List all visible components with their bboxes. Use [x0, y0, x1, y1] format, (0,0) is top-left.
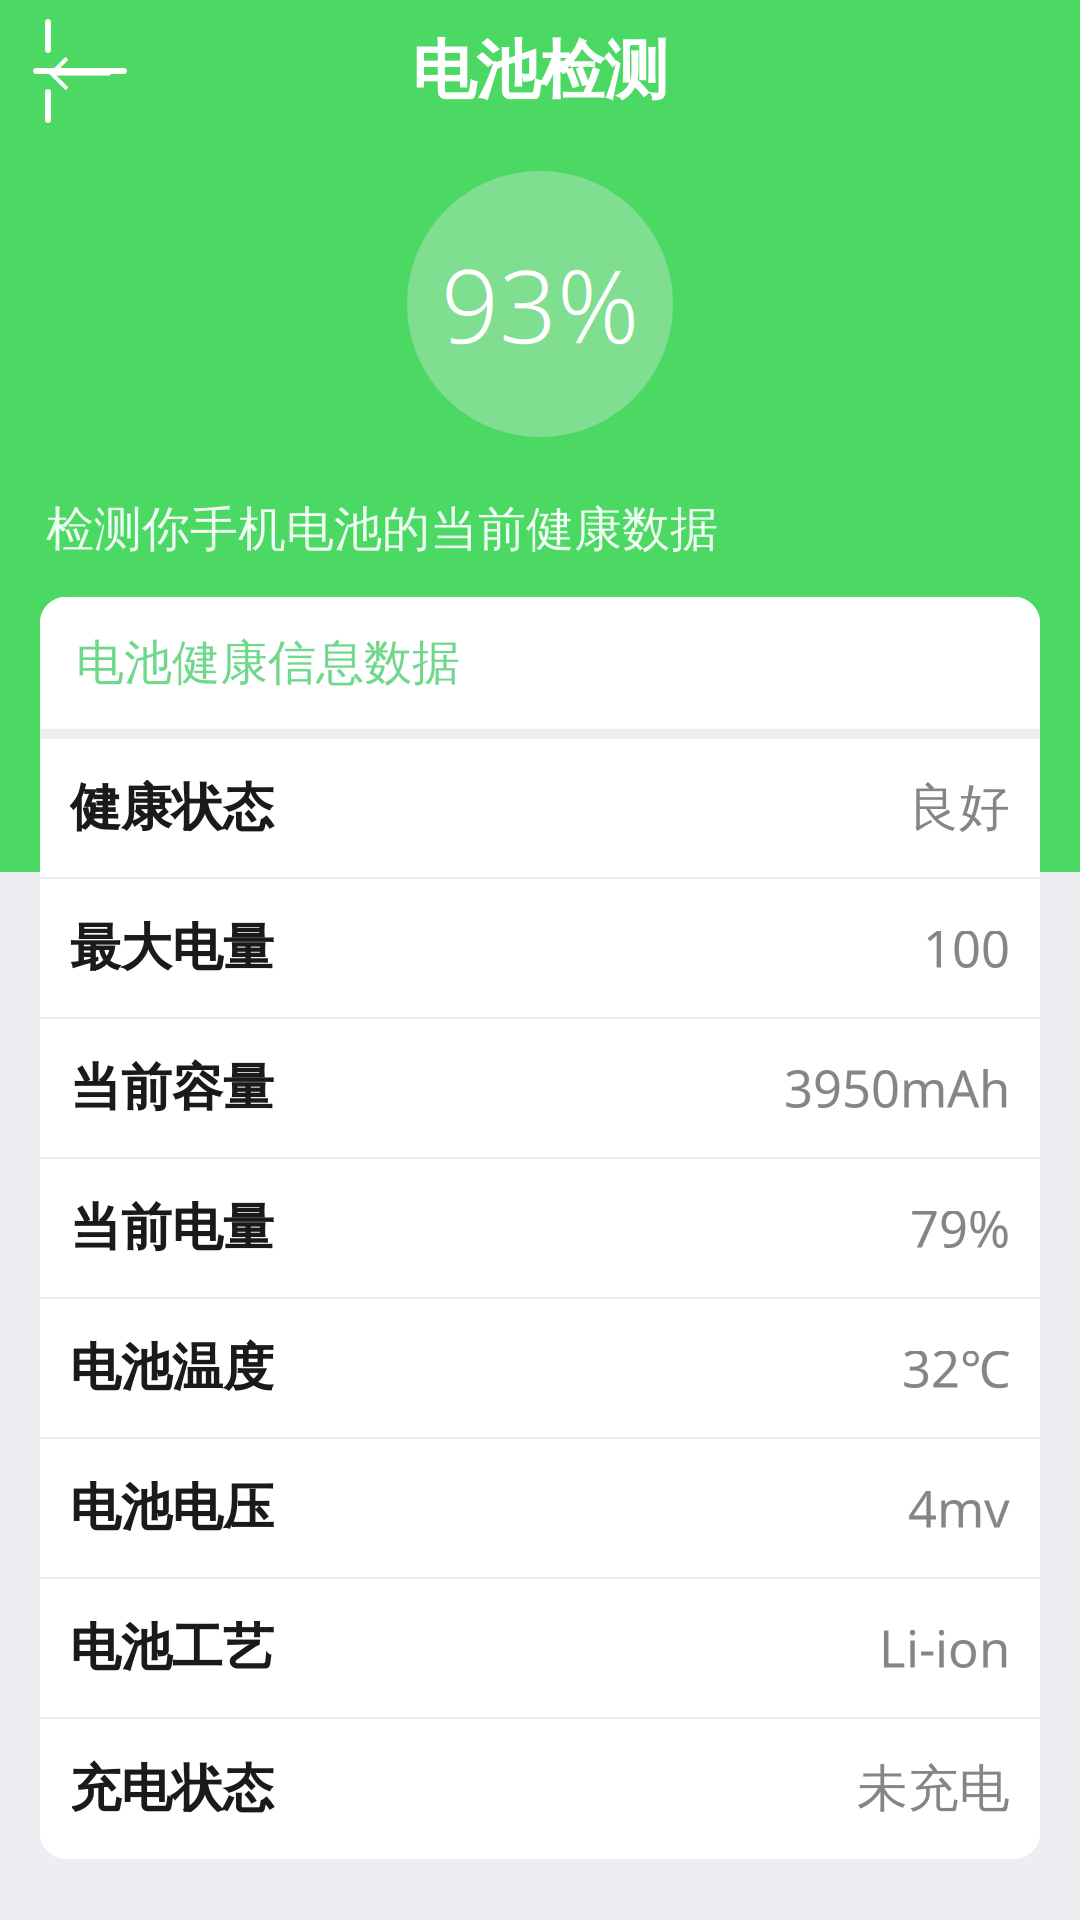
button[interactable]: 电池电压	[40, 1439, 1040, 1579]
staticText: 检测你手机电池的当前健康数据	[46, 500, 718, 559]
button[interactable]: 返回	[0, 11, 160, 131]
staticText: 电池检测	[412, 32, 668, 110]
staticText: 93%	[441, 237, 639, 371]
staticText: 电池工艺	[70, 1617, 274, 1679]
button[interactable]: 充电状态	[40, 1719, 1040, 1859]
staticText: 当前容量	[70, 1057, 274, 1119]
button[interactable]: 电池温度	[40, 1299, 1040, 1439]
staticText: 良好	[908, 777, 1010, 839]
staticText: 未充电	[857, 1758, 1010, 1820]
button[interactable]: 电池工艺	[40, 1579, 1040, 1719]
staticText: 79%	[910, 1194, 1010, 1262]
staticText: 电池健康信息数据	[76, 633, 460, 692]
staticText: 4mv	[908, 1474, 1010, 1542]
staticText: ←	[45, 24, 114, 118]
button[interactable]: 当前电量	[40, 1159, 1040, 1299]
staticText: 最大电量	[70, 917, 274, 979]
staticText: 电池电压	[70, 1477, 274, 1539]
staticText: 32℃	[902, 1334, 1010, 1402]
staticText: 电池温度	[70, 1337, 274, 1399]
staticText: 100	[923, 914, 1010, 982]
staticText: Li-ion	[879, 1614, 1010, 1682]
button[interactable]: 当前容量	[40, 1019, 1040, 1159]
button[interactable]: 最大电量	[40, 879, 1040, 1019]
staticText: 健康状态	[70, 777, 274, 839]
staticText: 充电状态	[70, 1758, 274, 1820]
staticText: 3950mAh	[784, 1054, 1010, 1122]
staticText: 当前电量	[70, 1197, 274, 1259]
button[interactable]: 健康状态	[40, 739, 1040, 879]
